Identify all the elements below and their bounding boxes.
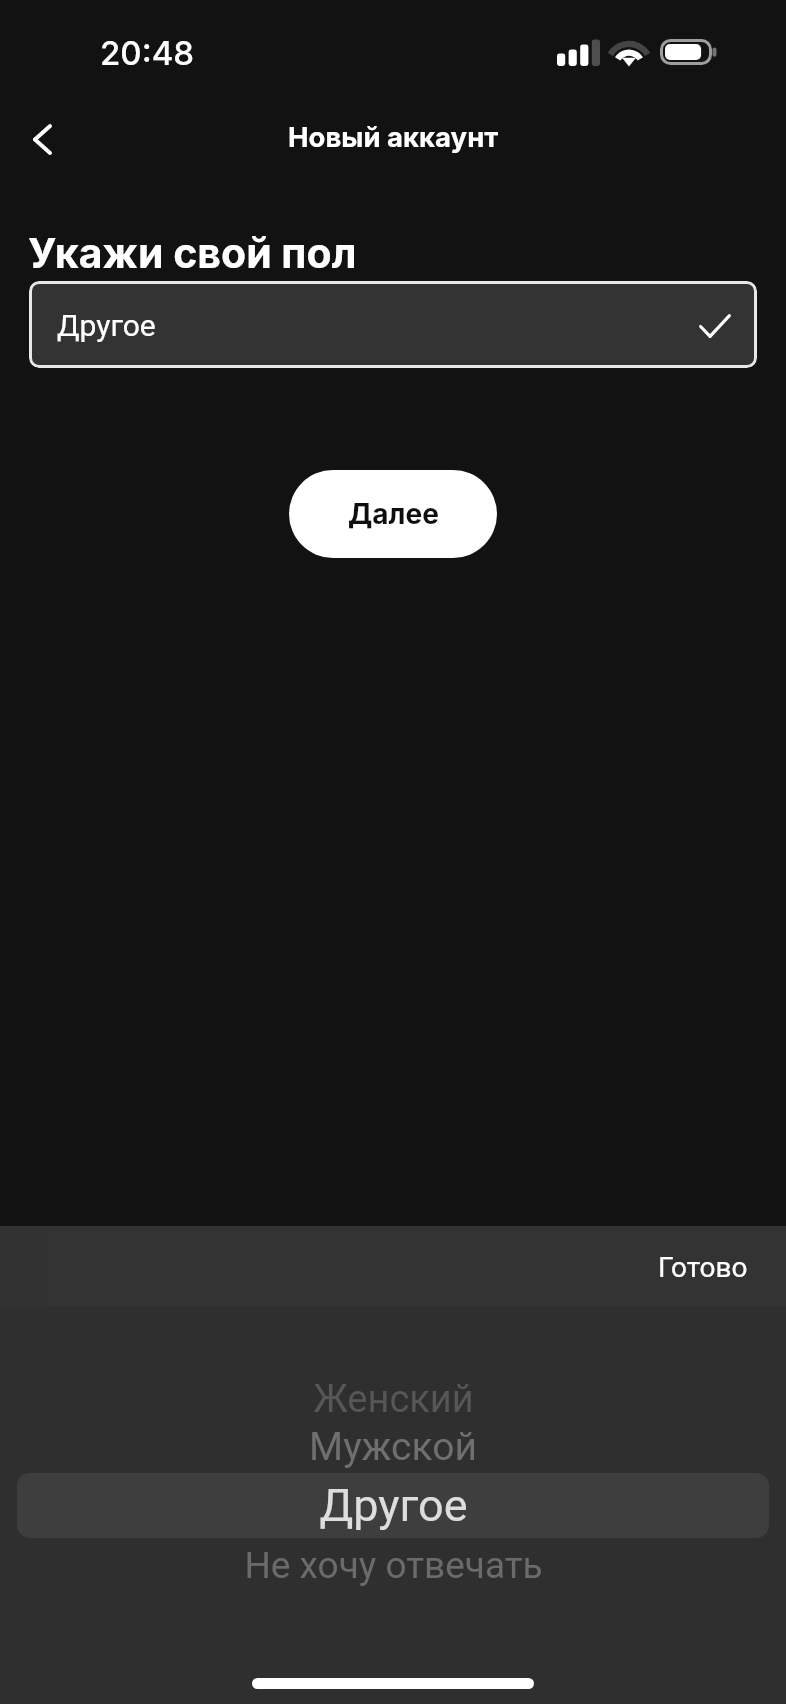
button[interactable]: Далее [289,470,497,558]
staticText: Другое [319,1479,468,1532]
button[interactable]: Cancel [48,1226,786,1307]
staticText: Готово [658,1251,748,1284]
staticText: 20:48 [100,33,195,73]
button[interactable]: Женский [0,1364,786,1434]
button[interactable]: Готово [620,1235,786,1300]
staticText: Женский [313,1377,474,1422]
button[interactable]: Другое [29,281,757,368]
staticText: Не хочу отвечать [244,1544,543,1587]
button[interactable]: Не хочу отвечать [0,1530,786,1600]
staticText: Мужской [309,1424,477,1470]
staticText: Укажи свой пол [28,228,357,278]
staticText: Новый аккаунт [288,120,499,153]
staticText: Далее [348,497,439,531]
button[interactable]: Другое [0,1470,786,1540]
button[interactable]: Мужской [0,1412,786,1482]
button[interactable]: Back [6,97,78,181]
staticText: Другое [57,308,156,343]
